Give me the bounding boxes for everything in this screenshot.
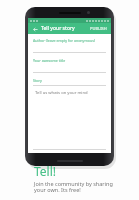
button[interactable]: Tell us whats on your mind bbox=[33, 89, 106, 149]
staticText: PUBLISH bbox=[90, 26, 107, 31]
button[interactable]: Author (leave empty for anonymous) bbox=[33, 38, 106, 53]
staticText: Tell us whats on your mind bbox=[35, 90, 88, 96]
staticText: Tell your story bbox=[41, 25, 75, 32]
staticText: Join the community by sharing your own. … bbox=[34, 180, 125, 194]
button[interactable]: Your awesome title bbox=[33, 58, 106, 73]
staticText: Your awesome title bbox=[33, 58, 66, 63]
staticText: Story bbox=[33, 78, 42, 83]
button[interactable]: PUBLISH bbox=[89, 25, 108, 32]
button[interactable]: Back bbox=[31, 25, 39, 33]
staticText: Tell! bbox=[34, 163, 57, 179]
staticText: Author (leave empty for anonymous) bbox=[33, 38, 95, 43]
